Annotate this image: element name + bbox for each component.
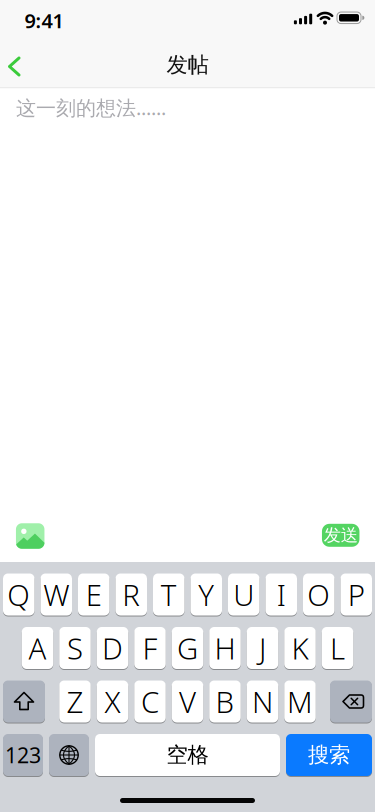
button[interactable]: W — [40, 573, 72, 615]
staticText: 发送 — [324, 525, 358, 546]
staticText: J — [259, 628, 266, 667]
staticText: 123 — [5, 741, 41, 769]
staticText: V — [179, 682, 196, 721]
button[interactable]: 搜索 — [286, 734, 372, 776]
button[interactable]: P — [340, 573, 372, 615]
staticText: A — [28, 628, 46, 667]
staticText: H — [214, 628, 235, 667]
button[interactable]: L — [322, 627, 353, 669]
staticText: 9:41 — [24, 7, 63, 34]
staticText: L — [330, 628, 345, 667]
button[interactable]: S — [59, 627, 91, 669]
staticText: P — [348, 575, 365, 614]
staticText: 空格 — [166, 742, 208, 768]
staticText: T — [161, 575, 177, 614]
button[interactable]: Shift — [3, 680, 45, 722]
button[interactable]: T — [153, 573, 184, 615]
button[interactable]: M — [284, 680, 316, 722]
staticText: N — [252, 682, 273, 721]
button[interactable]: Y — [190, 573, 222, 615]
button[interactable]: E — [78, 573, 109, 615]
staticText: C — [141, 682, 159, 721]
button[interactable]: J — [247, 627, 278, 669]
button[interactable]: D — [97, 627, 128, 669]
button[interactable]: F — [134, 627, 166, 669]
staticText: K — [291, 628, 308, 667]
staticText: U — [233, 575, 254, 614]
button[interactable]: N — [247, 680, 278, 722]
staticText: X — [104, 682, 120, 721]
staticText: O — [307, 575, 330, 614]
staticText: 搜索 — [308, 742, 350, 768]
staticText: Q — [7, 575, 30, 614]
button[interactable]: Delete — [330, 680, 372, 722]
button[interactable]: I — [265, 573, 297, 615]
staticText: S — [67, 628, 83, 667]
staticText: 这一刻的想法...... — [16, 94, 166, 121]
button[interactable]: G — [172, 627, 203, 669]
button[interactable]: Z — [59, 680, 91, 722]
staticText: M — [287, 682, 313, 721]
button[interactable]: V — [172, 680, 203, 722]
staticText: 发帖 — [166, 52, 208, 78]
button[interactable]: R — [115, 573, 147, 615]
button[interactable]: Back — [0, 46, 34, 86]
button[interactable]: C — [134, 680, 166, 722]
staticText: E — [86, 575, 102, 614]
staticText: Z — [66, 682, 83, 721]
button[interactable]: 123 — [3, 734, 43, 776]
staticText: F — [142, 628, 157, 667]
button[interactable]: K — [284, 627, 316, 669]
staticText: I — [277, 575, 286, 614]
staticText: W — [43, 575, 69, 614]
button[interactable]: 发送 — [322, 524, 359, 547]
button[interactable]: Q — [3, 573, 34, 615]
staticText: Y — [198, 575, 214, 614]
button[interactable]: U — [228, 573, 259, 615]
staticText: R — [122, 575, 140, 614]
staticText: D — [102, 628, 123, 667]
button[interactable]: Next keyboard — [49, 734, 89, 776]
button[interactable]: O — [303, 573, 334, 615]
button[interactable]: X — [97, 680, 128, 722]
staticText: B — [215, 682, 234, 721]
button[interactable]: H — [209, 627, 241, 669]
button[interactable]: A — [22, 627, 53, 669]
staticText: G — [177, 628, 198, 667]
button[interactable]: 空格 — [95, 734, 280, 776]
button[interactable]: Add photo — [16, 523, 44, 549]
button[interactable]: B — [209, 680, 241, 722]
